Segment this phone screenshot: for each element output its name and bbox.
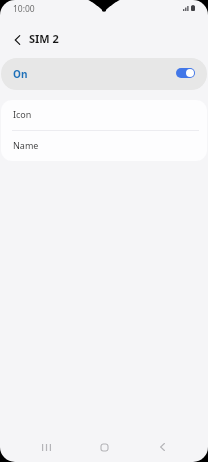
- button[interactable]: On: [1, 58, 207, 90]
- button[interactable]: Recent apps: [17, 432, 75, 462]
- button[interactable]: Navigate up: [5, 28, 29, 52]
- staticText: Name: [13, 139, 39, 151]
- staticText: SIM 2: [29, 31, 59, 46]
- button[interactable]: Name: [1, 131, 207, 161]
- staticText: On: [13, 67, 28, 81]
- staticText: Icon: [13, 108, 32, 120]
- button[interactable]: Home: [75, 432, 133, 462]
- button[interactable]: Icon: [1, 100, 207, 130]
- button[interactable]: Back: [133, 432, 191, 462]
- staticText: 10:00: [13, 3, 35, 15]
